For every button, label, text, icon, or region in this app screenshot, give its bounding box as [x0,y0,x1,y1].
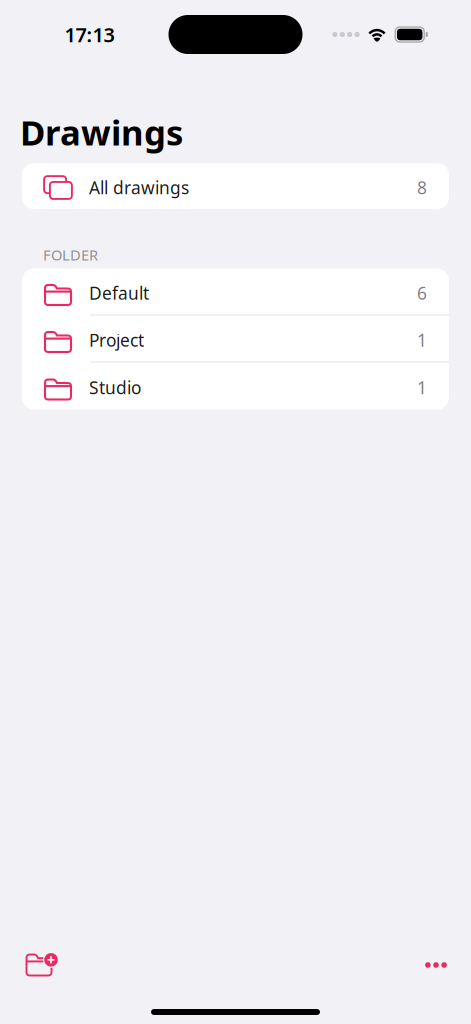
staticText: All drawings [89,176,189,199]
staticText: Project [89,328,144,351]
staticText: Default [89,281,149,304]
button[interactable]: More [414,951,456,979]
staticText: 8 [417,176,427,199]
button[interactable]: New Folder [15,943,68,987]
staticText: FOLDER [43,245,98,264]
staticText: 17:13 [64,21,114,48]
button[interactable]: Default [22,268,449,315]
staticText: Studio [89,376,141,399]
staticText: 1 [417,328,427,351]
button[interactable]: Studio [22,362,449,409]
staticText: Drawings [20,109,183,155]
staticText: 1 [417,376,427,399]
button[interactable]: All drawings [22,163,449,209]
button[interactable]: Project [22,315,449,362]
staticText: 6 [417,281,427,304]
